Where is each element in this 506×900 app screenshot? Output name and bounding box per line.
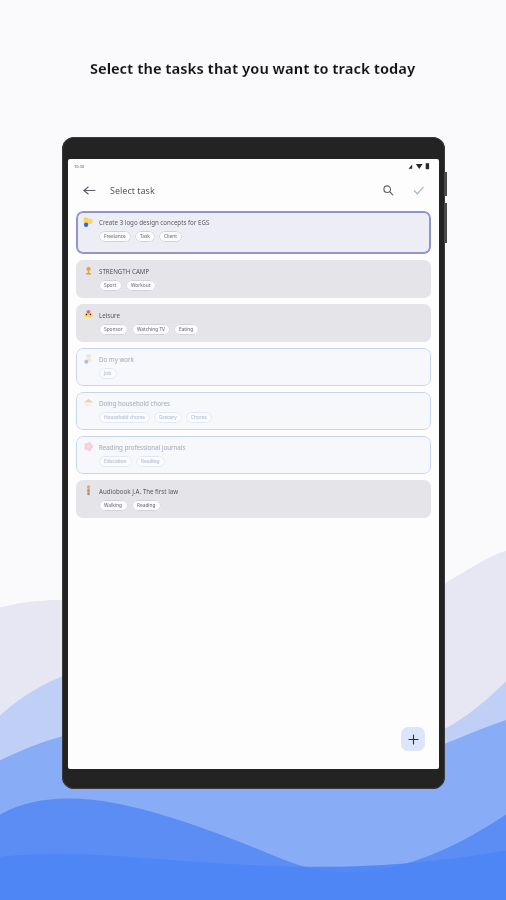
button[interactable]: Do my work bbox=[76, 348, 431, 386]
button[interactable]: Reading bbox=[132, 500, 161, 511]
button[interactable]: Chores bbox=[186, 412, 212, 423]
button[interactable]: Household chores bbox=[99, 412, 150, 423]
button[interactable]: Sponsor bbox=[99, 324, 128, 335]
staticText: Sport bbox=[104, 282, 117, 289]
button[interactable]: Create 3 logo design concepts for EGS bbox=[76, 211, 431, 254]
button[interactable]: Education bbox=[99, 456, 132, 467]
button[interactable]: Search bbox=[377, 179, 399, 201]
staticText: Reading bbox=[141, 458, 160, 465]
staticText: Sponsor bbox=[104, 326, 123, 333]
button[interactable]: Reading professional journals bbox=[76, 436, 431, 474]
button[interactable]: Grocery bbox=[154, 412, 182, 423]
staticText: Freelance bbox=[104, 233, 126, 240]
staticText: Watching TV bbox=[137, 326, 165, 333]
staticText: 10:30 bbox=[74, 164, 85, 169]
staticText: Job bbox=[104, 370, 112, 377]
button[interactable]: Walking bbox=[99, 500, 128, 511]
button[interactable]: Leisure bbox=[76, 304, 431, 342]
staticText: Workout bbox=[131, 282, 151, 289]
staticText: Eating bbox=[179, 326, 194, 333]
button[interactable]: STRENGTH CAMP bbox=[76, 260, 431, 298]
staticText: Chores bbox=[191, 414, 207, 421]
button[interactable]: Watching TV bbox=[132, 324, 170, 335]
button[interactable]: Task bbox=[135, 231, 155, 242]
staticText: Doing household chores bbox=[99, 399, 170, 407]
button[interactable]: Freelance bbox=[99, 231, 131, 242]
staticText: STRENGTH CAMP bbox=[99, 267, 150, 275]
button[interactable]: Add task bbox=[401, 727, 425, 751]
button[interactable]: Job bbox=[99, 368, 117, 379]
button[interactable]: Back bbox=[78, 179, 100, 201]
staticText: Create 3 logo design concepts for EGS bbox=[99, 218, 210, 226]
staticText: Reading professional journals bbox=[99, 443, 186, 451]
button[interactable]: Audiobook J.A. The first law bbox=[76, 480, 431, 518]
staticText: Client bbox=[164, 233, 177, 240]
staticText: Grocery bbox=[159, 414, 177, 421]
staticText: Education bbox=[104, 458, 127, 465]
staticText: Do my work bbox=[99, 355, 134, 363]
staticText: Leisure bbox=[99, 311, 121, 319]
button[interactable]: Sport bbox=[99, 280, 122, 291]
staticText: Select the tasks that you want to track … bbox=[90, 58, 416, 78]
button[interactable]: Client bbox=[159, 231, 182, 242]
button[interactable]: Doing household chores bbox=[76, 392, 431, 430]
staticText: Audiobook J.A. The first law bbox=[99, 487, 179, 495]
button[interactable]: Workout bbox=[126, 280, 156, 291]
staticText: Walking bbox=[104, 502, 123, 509]
button[interactable]: Eating bbox=[174, 324, 199, 335]
button[interactable]: Reading bbox=[136, 456, 165, 467]
button[interactable]: Confirm bbox=[407, 179, 429, 201]
staticText: Household chores bbox=[104, 414, 145, 421]
staticText: Reading bbox=[137, 502, 156, 509]
staticText: Select task bbox=[110, 184, 155, 196]
staticText: Task bbox=[140, 233, 150, 240]
